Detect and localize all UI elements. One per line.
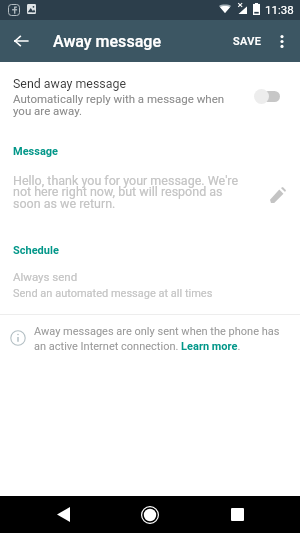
button[interactable]: Send away message [0, 70, 300, 118]
staticText: Hello, thank you for your message. We're… [13, 173, 243, 211]
staticText: Automatically reply with a message when … [13, 92, 241, 117]
button[interactable]: More options [265, 24, 299, 58]
staticText: Away message [53, 32, 161, 51]
other: Edit message [264, 181, 292, 209]
staticText: Send away message [13, 76, 126, 91]
staticText: Send an automated message at all times [13, 287, 213, 300]
staticText: Always send [13, 270, 78, 283]
staticText: Schedule [13, 244, 59, 257]
staticText: Message [13, 145, 59, 158]
button[interactable]: SAVE [226, 23, 265, 60]
staticText: Away messages are only sent when the pho… [34, 325, 286, 352]
button[interactable]: Hello, thank you for your message. We're… [0, 168, 300, 212]
staticText: SAVE [233, 35, 262, 48]
button[interactable]: Back [39, 496, 87, 533]
button[interactable]: Navigate up [0, 20, 42, 62]
button[interactable]: Always send [0, 267, 300, 307]
button[interactable]: Send away message toggle [248, 81, 288, 109]
button[interactable]: Recent apps [213, 496, 261, 533]
button[interactable]: Home [126, 496, 174, 533]
staticText: 11:38 [265, 3, 294, 16]
